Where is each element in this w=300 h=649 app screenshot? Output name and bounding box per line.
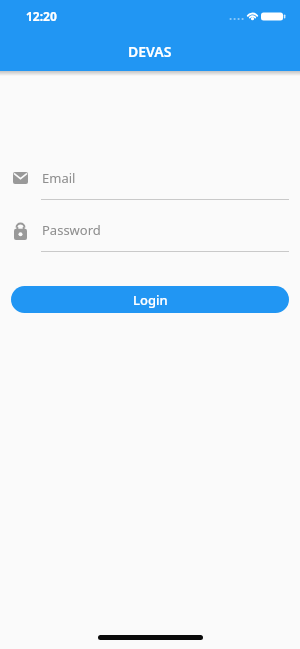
staticText: 12:20 xyxy=(26,8,57,24)
button[interactable]: Login xyxy=(11,286,289,313)
staticText: Password xyxy=(42,221,101,239)
staticText: Login xyxy=(133,291,168,309)
button[interactable]: Password xyxy=(0,218,300,254)
staticText: DEVAS xyxy=(128,42,172,61)
staticText: Email xyxy=(42,169,76,187)
button[interactable]: Email xyxy=(0,166,300,202)
